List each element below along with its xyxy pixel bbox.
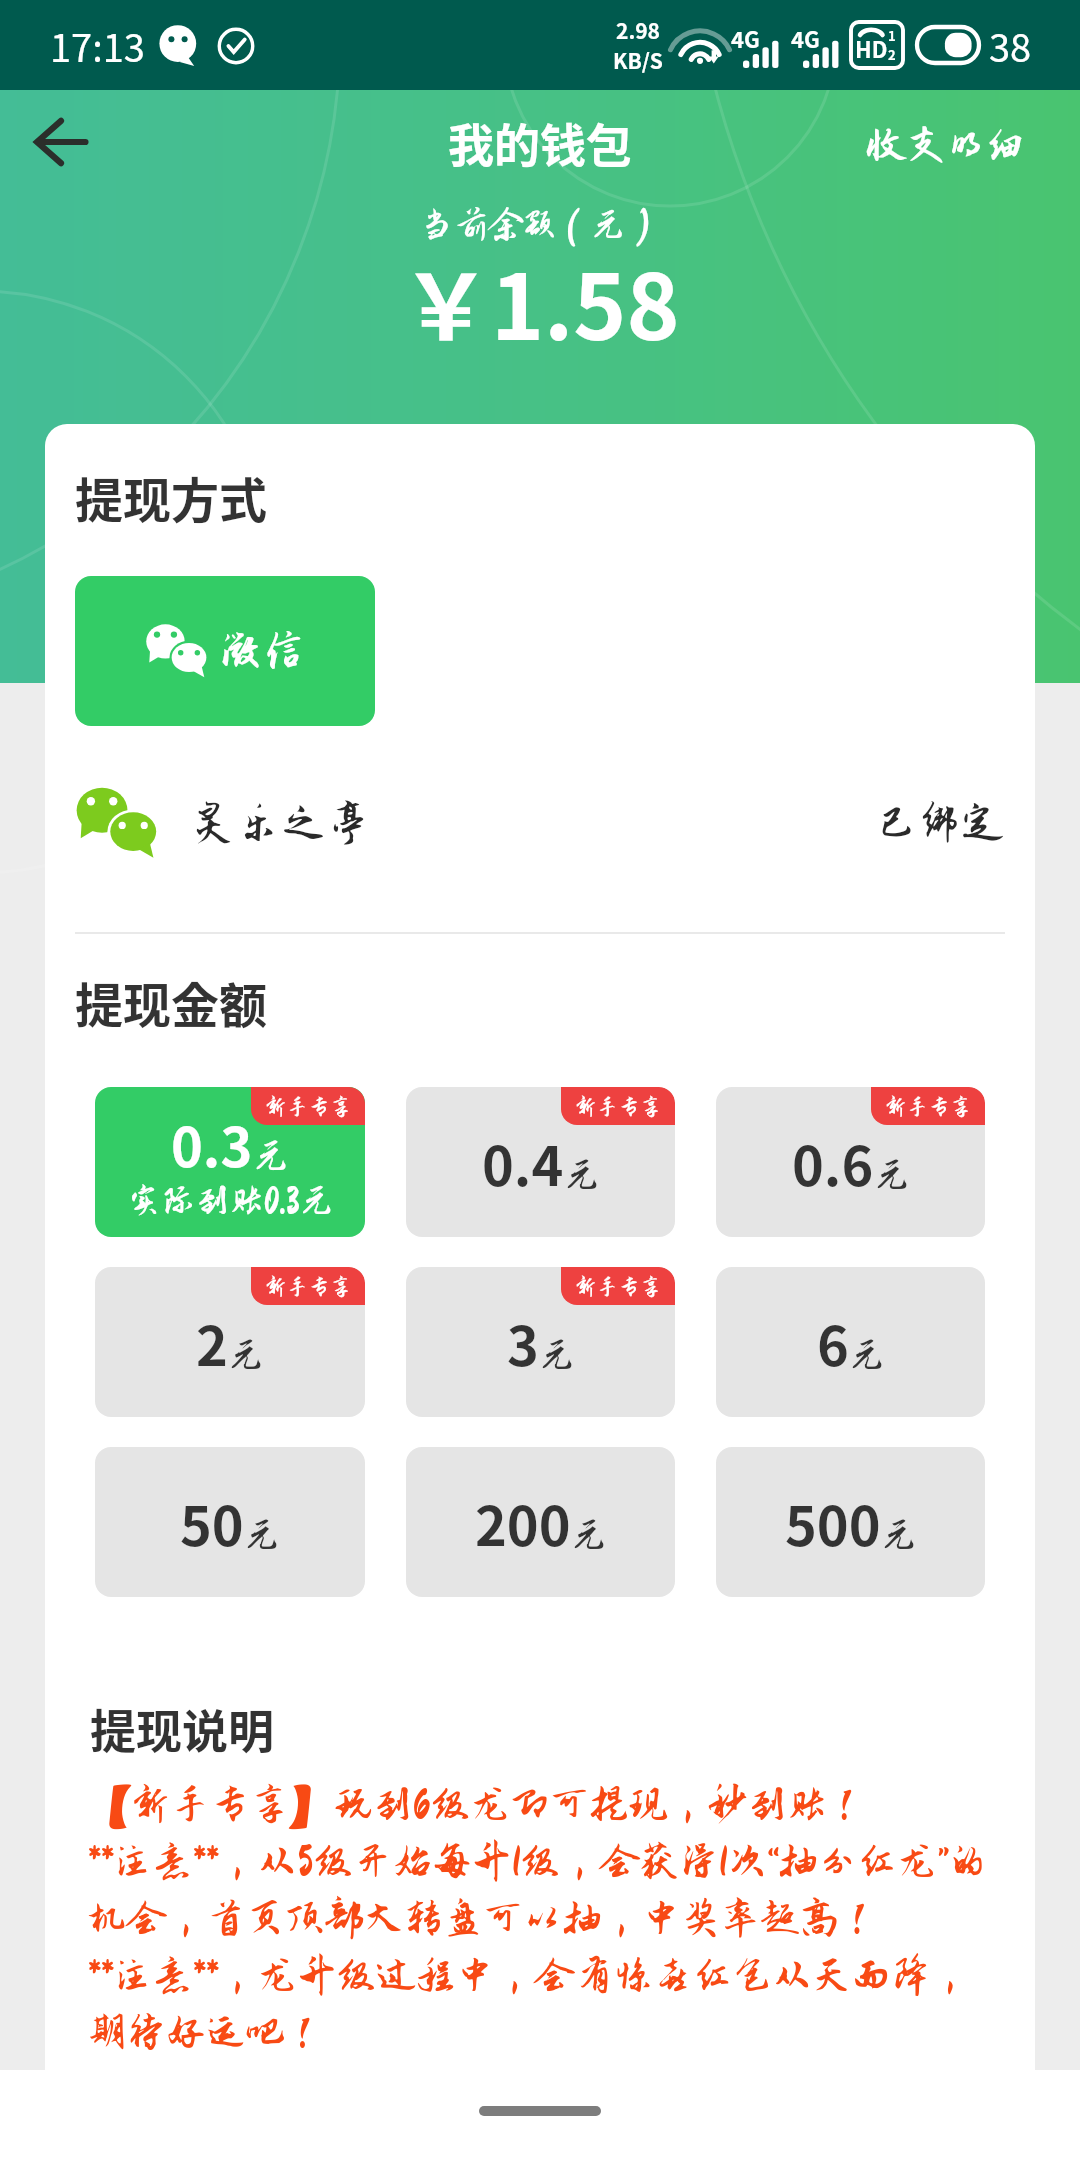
staticText: 提现方式 (75, 462, 268, 532)
button[interactable]: 3 (406, 1267, 675, 1417)
staticText: 4G (791, 22, 820, 54)
staticText: 新手专享 (265, 1095, 352, 1119)
button[interactable]: 微信 (75, 576, 375, 726)
staticText: 元 (539, 1335, 575, 1375)
staticText: 2 (888, 45, 896, 63)
staticText: 元 (244, 1515, 280, 1555)
staticText: 4G (731, 22, 760, 54)
staticText: 17:13 (50, 18, 145, 73)
staticText: 元 (564, 1155, 600, 1195)
staticText: 1 (888, 26, 896, 45)
staticText: 我的钱包 (448, 109, 632, 176)
staticText: 新手专享 (265, 1275, 352, 1299)
button[interactable]: 0.6 (716, 1087, 985, 1237)
button[interactable]: 0.3 (95, 1087, 365, 1237)
button[interactable]: 50 (95, 1447, 365, 1597)
staticText: 0.4 (482, 1123, 564, 1201)
staticText: 灵乐之亭 (191, 798, 371, 848)
staticText: 新手专享 (575, 1095, 662, 1119)
staticText: 2 (196, 1303, 228, 1381)
staticText: 0.3 (171, 1104, 253, 1182)
button[interactable]: 6 (716, 1267, 985, 1417)
button[interactable]: 500 (716, 1447, 985, 1597)
staticText: HD (855, 32, 888, 64)
staticText: 元 (228, 1335, 264, 1375)
staticText: 6 (817, 1303, 849, 1381)
staticText: 200 (475, 1483, 571, 1561)
button[interactable]: 0.4 (406, 1087, 675, 1237)
staticText: 微信 (219, 627, 306, 675)
staticText: 38 (989, 18, 1032, 73)
staticText: 元 (849, 1335, 885, 1375)
staticText: 50 (180, 1483, 244, 1561)
staticText: 已绑定 (875, 799, 1005, 847)
staticText: 提现金额 (75, 967, 268, 1037)
staticText: 元 (253, 1136, 289, 1176)
staticText: ￥1.58 (401, 236, 680, 366)
staticText: 元 (571, 1515, 607, 1555)
staticText: 【新手专享】玩到6级龙即可提现，秒到账！ **注意**，从5级开始每升1级，会获… (87, 1782, 988, 2054)
button[interactable]: Back (10, 96, 112, 188)
staticText: 提现说明 (90, 1695, 274, 1762)
button[interactable]: 200 (406, 1447, 675, 1597)
button[interactable]: 2 (95, 1267, 365, 1417)
staticText: 2.98 (616, 15, 660, 45)
staticText: 元 (874, 1155, 910, 1195)
button[interactable]: 收支明细 (853, 110, 1080, 174)
staticText: 元 (881, 1515, 917, 1555)
staticText: 当前余额（元） (420, 206, 660, 244)
button[interactable]: 灵乐之亭 (75, 782, 1005, 864)
staticText: 3 (507, 1303, 539, 1381)
staticText: 500 (785, 1483, 881, 1561)
staticText: 实际到账0.3元 (127, 1182, 334, 1220)
staticText: 0.6 (792, 1123, 874, 1201)
staticText: 收支明细 (867, 123, 1026, 167)
staticText: KB/S (613, 45, 663, 75)
staticText: 新手专享 (575, 1275, 662, 1299)
staticText: 新手专享 (885, 1095, 972, 1119)
